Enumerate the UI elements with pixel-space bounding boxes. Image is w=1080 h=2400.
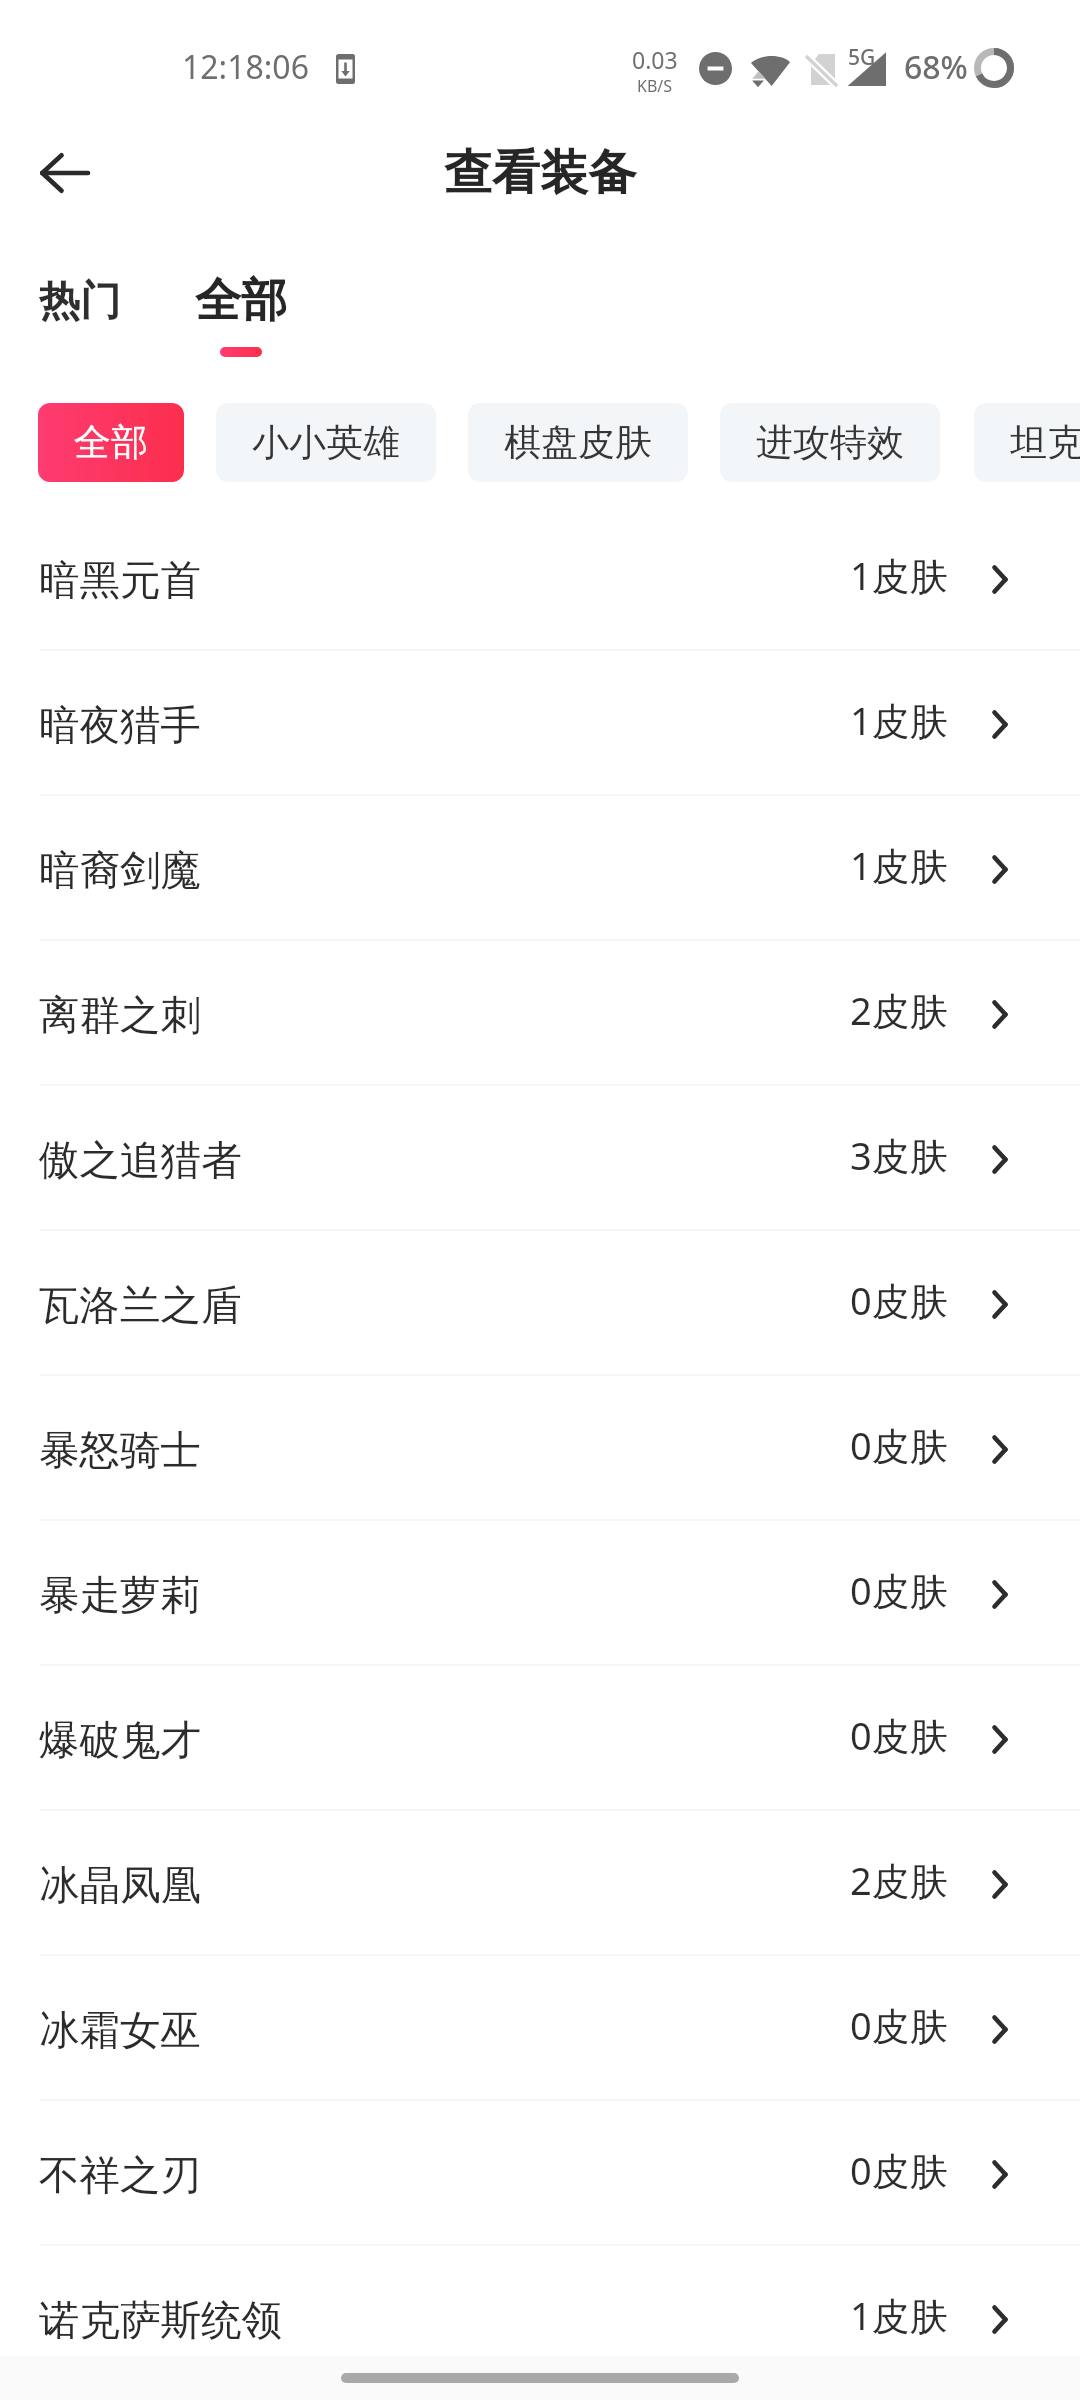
staticText: 0.03 bbox=[632, 44, 678, 75]
staticText: 坦克特效 bbox=[1010, 419, 1080, 466]
staticText: 傲之追猎者 bbox=[39, 1135, 242, 1186]
staticText: 进攻特效 bbox=[756, 419, 904, 466]
staticText: 0皮肤 bbox=[850, 1564, 948, 1616]
button[interactable]: 热门 bbox=[9, 264, 151, 340]
button[interactable]: 瓦洛兰之盾 bbox=[0, 1231, 1080, 1376]
staticText: 0皮肤 bbox=[850, 1999, 948, 2051]
button[interactable]: 暴走萝莉 bbox=[0, 1521, 1080, 1666]
staticText: 诺克萨斯统领 bbox=[39, 2295, 282, 2346]
staticText: 2皮肤 bbox=[850, 1854, 948, 1906]
button[interactable]: 返回 bbox=[16, 136, 113, 209]
staticText: 暗夜猎手 bbox=[39, 700, 201, 751]
button[interactable]: 小小英雄 bbox=[216, 403, 436, 482]
staticText: 小小英雄 bbox=[252, 419, 400, 466]
staticText: 1皮肤 bbox=[850, 694, 948, 746]
button[interactable]: 棋盘皮肤 bbox=[468, 403, 688, 482]
staticText: 暗裔剑魔 bbox=[39, 845, 201, 896]
button[interactable]: 离群之刺 bbox=[0, 941, 1080, 1086]
button[interactable]: 不祥之刃 bbox=[0, 2101, 1080, 2246]
button[interactable]: 诺克萨斯统领 bbox=[0, 2246, 1080, 2391]
staticText: 1皮肤 bbox=[850, 839, 948, 891]
staticText: 1皮肤 bbox=[850, 549, 948, 601]
staticText: 暴怒骑士 bbox=[39, 1425, 201, 1476]
staticText: 查看装备 bbox=[444, 143, 636, 203]
staticText: 1皮肤 bbox=[850, 2289, 948, 2341]
staticText: 68% bbox=[904, 45, 968, 89]
staticText: 全部 bbox=[74, 419, 148, 466]
staticText: KB/S bbox=[637, 75, 673, 97]
staticText: 棋盘皮肤 bbox=[504, 419, 652, 466]
button[interactable]: 暗黑元首 bbox=[0, 506, 1080, 651]
staticText: 12:18:06 bbox=[182, 45, 309, 89]
staticText: 2皮肤 bbox=[850, 984, 948, 1036]
staticText: 5G bbox=[848, 43, 876, 72]
staticText: 冰晶凤凰 bbox=[39, 1860, 201, 1911]
button[interactable]: 冰晶凤凰 bbox=[0, 1811, 1080, 1956]
staticText: 0皮肤 bbox=[850, 2144, 948, 2196]
button[interactable]: 进攻特效 bbox=[720, 403, 940, 482]
button[interactable]: 爆破鬼才 bbox=[0, 1666, 1080, 1811]
staticText: 0皮肤 bbox=[850, 1419, 948, 1471]
staticText: 不祥之刃 bbox=[39, 2150, 201, 2201]
staticText: 热门 bbox=[39, 276, 121, 328]
staticText: 暴走萝莉 bbox=[39, 1570, 201, 1621]
button[interactable]: 全部 bbox=[38, 403, 184, 482]
staticText: 0皮肤 bbox=[850, 1709, 948, 1761]
button[interactable]: 傲之追猎者 bbox=[0, 1086, 1080, 1231]
staticText: 爆破鬼才 bbox=[39, 1715, 201, 1766]
button[interactable]: 全部 bbox=[165, 262, 317, 367]
staticText: 3皮肤 bbox=[850, 1129, 948, 1181]
button[interactable]: 暴怒骑士 bbox=[0, 1376, 1080, 1521]
button[interactable]: 冰霜女巫 bbox=[0, 1956, 1080, 2101]
staticText: 0皮肤 bbox=[850, 1274, 948, 1326]
staticText: 离群之刺 bbox=[39, 990, 201, 1041]
button[interactable]: 暗夜猎手 bbox=[0, 651, 1080, 796]
staticText: 全部 bbox=[195, 272, 287, 330]
staticText: 瓦洛兰之盾 bbox=[39, 1280, 242, 1331]
staticText: 暗黑元首 bbox=[39, 555, 201, 606]
button[interactable]: 坦克特效 bbox=[974, 403, 1080, 482]
button[interactable]: 暗裔剑魔 bbox=[0, 796, 1080, 941]
staticText: 冰霜女巫 bbox=[39, 2005, 201, 2056]
